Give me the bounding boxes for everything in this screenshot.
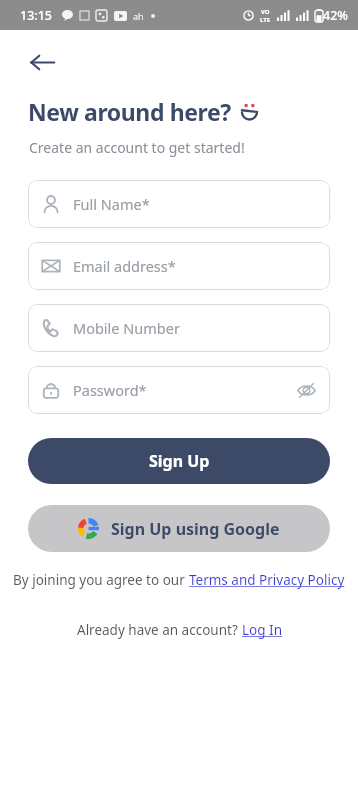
button[interactable]: Back: [18, 38, 66, 86]
staticText: 42%: [323, 7, 348, 24]
button[interactable]: Sign Up using Google: [28, 505, 330, 552]
staticText: 13:15: [20, 7, 53, 24]
staticText: VO: [261, 8, 270, 16]
staticText: Sign Up using Google: [111, 518, 280, 540]
staticText: By joining you agree to our: [13, 571, 189, 589]
staticText: ah: [133, 10, 144, 22]
staticText: Create an account to get started!: [29, 138, 245, 157]
staticText: Password*: [73, 380, 147, 400]
staticText: Mobile Number: [73, 318, 180, 338]
staticText: Already have an account?: [77, 621, 242, 639]
staticText: Terms and Privacy Policy: [189, 571, 345, 589]
button[interactable]: Full Name*: [28, 180, 330, 228]
button[interactable]: Show password: [286, 370, 326, 410]
staticText: Sign Up: [149, 450, 210, 472]
staticText: New around here?: [28, 96, 231, 127]
staticText: Email address*: [73, 256, 176, 276]
button[interactable]: Password*: [28, 366, 330, 414]
staticText: LTE: [260, 16, 271, 24]
button[interactable]: Terms and Privacy Policy: [189, 571, 345, 589]
button[interactable]: Log In: [242, 621, 282, 639]
staticText: Full Name*: [73, 194, 150, 214]
button[interactable]: Mobile Number: [28, 304, 330, 352]
staticText: Log In: [242, 621, 282, 639]
button[interactable]: Sign Up: [28, 438, 330, 484]
button[interactable]: Email address*: [28, 242, 330, 290]
